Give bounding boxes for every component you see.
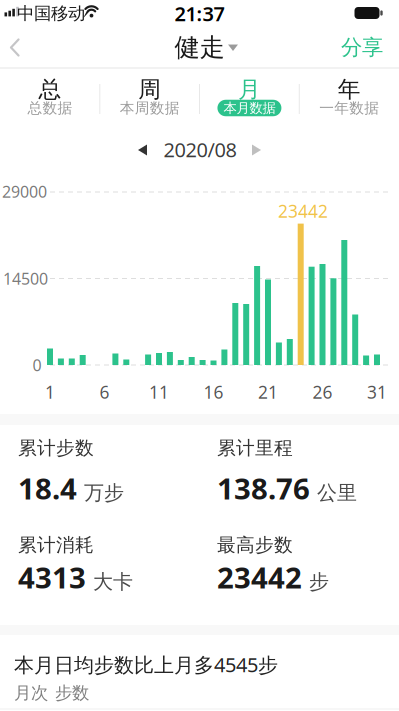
staticText: 步数 (55, 682, 89, 704)
staticText: 4313 (18, 557, 86, 596)
button[interactable] (241, 135, 271, 165)
staticText: 一年数据 (319, 99, 379, 117)
staticText: 最高步数 (217, 533, 293, 556)
staticText: 1 (45, 380, 55, 403)
staticText: 本月数据 (223, 100, 275, 116)
staticText: 本周数据 (120, 99, 180, 117)
staticText: 分享 (341, 34, 383, 61)
staticText: 29000 (2, 181, 47, 202)
staticText: 18.4 (18, 468, 77, 507)
button[interactable]: 周 (100, 68, 199, 127)
staticText: 21 (258, 380, 278, 403)
staticText: 累计步数 (18, 436, 94, 459)
staticText: 年 (338, 76, 361, 103)
staticText: 0 (32, 354, 41, 376)
staticText: 26 (312, 380, 332, 403)
staticText: 健走 (174, 32, 224, 63)
staticText: 23442 (278, 199, 328, 222)
staticText: 万步 (84, 480, 124, 505)
staticText: 周 (138, 76, 161, 103)
staticText: 累计里程 (217, 436, 293, 459)
staticText: 总 (38, 76, 61, 103)
staticText: 步 (309, 569, 329, 594)
staticText: 23442 (217, 557, 302, 596)
staticText: 14500 (3, 268, 48, 289)
staticText: 21:37 (174, 0, 224, 27)
staticText: 16 (203, 380, 223, 403)
staticText: 6 (99, 380, 109, 403)
staticText: 大卡 (93, 569, 133, 594)
staticText: 中国移动 (17, 3, 85, 24)
staticText: 11 (149, 380, 169, 403)
staticText: 138.76 (217, 468, 310, 507)
button[interactable]: 分享 (337, 32, 387, 62)
button[interactable]: 月 (199, 68, 299, 127)
button[interactable]: 健走 (178, 32, 238, 62)
button[interactable]: 年 (299, 68, 399, 127)
staticText: 31 (367, 380, 387, 403)
staticText: 月 (238, 76, 261, 103)
staticText: 本月日均步数比上月多4545步 (14, 651, 278, 678)
staticText: 总数据 (27, 99, 72, 117)
staticText: 公里 (317, 480, 357, 505)
button[interactable] (0, 32, 30, 62)
staticText: 累计消耗 (18, 533, 94, 556)
button[interactable]: 总 (0, 68, 100, 127)
button[interactable] (127, 135, 157, 165)
staticText: 月次 (14, 682, 48, 704)
staticText: 2020/08 (163, 136, 236, 163)
